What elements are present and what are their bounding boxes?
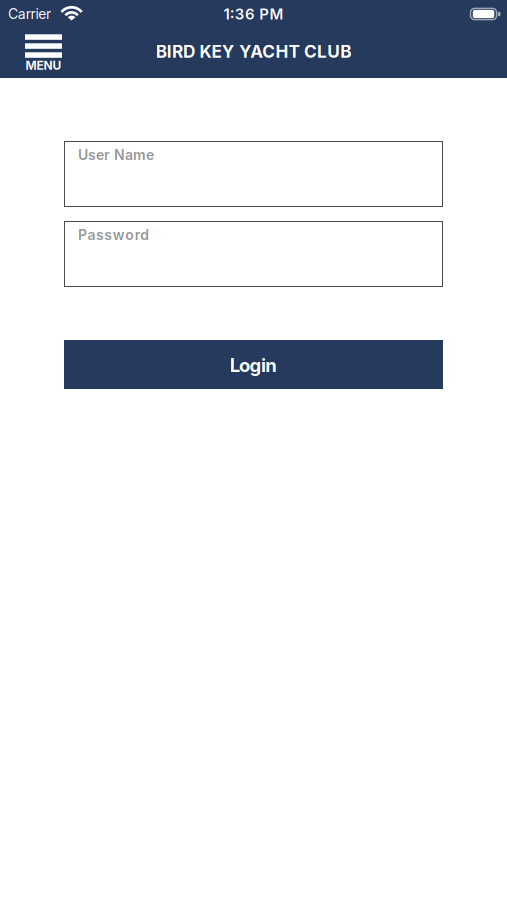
button[interactable]: Login: [64, 340, 443, 389]
staticText: Login: [230, 354, 277, 376]
button[interactable]: User Name: [64, 141, 443, 207]
staticText: 1:36 PM: [223, 5, 283, 23]
staticText: MENU: [25, 58, 61, 72]
staticText: BIRD KEY YACHT CLUB: [156, 41, 351, 62]
button[interactable]: Password: [64, 221, 443, 287]
staticText: User Name: [78, 146, 154, 163]
staticText: Password: [78, 226, 149, 243]
button[interactable]: Menu: [25, 34, 62, 72]
staticText: Carrier: [8, 5, 51, 22]
